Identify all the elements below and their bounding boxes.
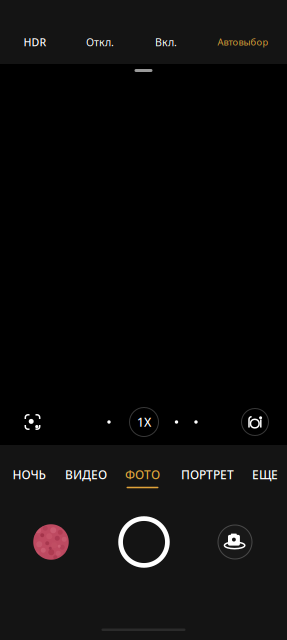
staticText: ЕЩЕ xyxy=(252,466,278,482)
staticText: HDR xyxy=(23,35,46,49)
button[interactable]: Switch camera xyxy=(218,525,252,559)
staticText: Автовыбор xyxy=(217,36,268,48)
staticText: Откл. xyxy=(86,35,114,49)
button[interactable]: Scene detection xyxy=(15,405,49,439)
staticText: Вкл. xyxy=(155,35,177,49)
button[interactable]: Last photo xyxy=(33,524,69,560)
button[interactable]: Откл. xyxy=(74,28,126,56)
button[interactable]: НОЧЬ xyxy=(7,463,51,493)
button[interactable]: ВИДЕО xyxy=(60,463,112,493)
button[interactable]: ПОРТРЕТ xyxy=(176,463,238,493)
button[interactable]: 1X xyxy=(129,407,158,436)
staticText: ВИДЕО xyxy=(65,466,107,482)
button[interactable]: ФОТО xyxy=(118,463,166,493)
staticText: 1X xyxy=(137,414,151,430)
button[interactable]: ЕЩЕ xyxy=(245,463,285,493)
button[interactable]: Photo styles xyxy=(241,408,268,435)
staticText: ПОРТРЕТ xyxy=(181,466,234,482)
button[interactable]: Take photo xyxy=(118,516,170,568)
button[interactable]: Вкл. xyxy=(143,28,189,56)
staticText: НОЧЬ xyxy=(12,466,45,482)
staticText: ФОТО xyxy=(125,466,160,482)
button[interactable]: Автовыбор xyxy=(206,28,280,56)
